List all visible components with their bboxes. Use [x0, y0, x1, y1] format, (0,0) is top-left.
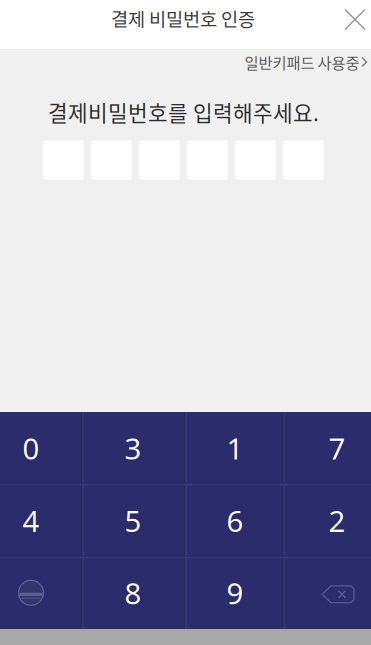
button[interactable]: 3	[87, 412, 179, 484]
staticText: 1	[226, 429, 243, 468]
button[interactable]: 0	[0, 412, 77, 484]
button[interactable]: 2	[291, 484, 371, 557]
button[interactable]: 8	[87, 557, 179, 629]
staticText: 8	[124, 573, 141, 612]
staticText: 2	[328, 501, 345, 540]
button[interactable]: 5	[87, 484, 179, 557]
button[interactable]: 일반키패드 사용중	[239, 46, 371, 78]
staticText: 결제비밀번호를 입력해주세요.	[48, 97, 319, 127]
staticText: 9	[226, 573, 243, 612]
staticText: 3	[124, 429, 141, 468]
staticText: 결제 비밀번호 인증	[111, 4, 255, 31]
staticText: 0	[22, 429, 39, 468]
staticText: 5	[124, 501, 141, 540]
staticText: 일반키패드 사용중	[244, 51, 359, 73]
button[interactable]: Delete	[292, 558, 371, 630]
button[interactable]: 1	[189, 412, 281, 484]
staticText: 7	[328, 429, 345, 468]
button[interactable]: 9	[189, 557, 281, 629]
button[interactable]: 6	[189, 484, 281, 557]
button[interactable]: Close	[336, 0, 371, 38]
staticText: 4	[22, 501, 39, 540]
button[interactable]: 7	[291, 412, 371, 484]
button[interactable]: 4	[0, 484, 77, 557]
button[interactable]: Shuffle keypad	[0, 557, 77, 629]
staticText: 6	[226, 501, 243, 540]
